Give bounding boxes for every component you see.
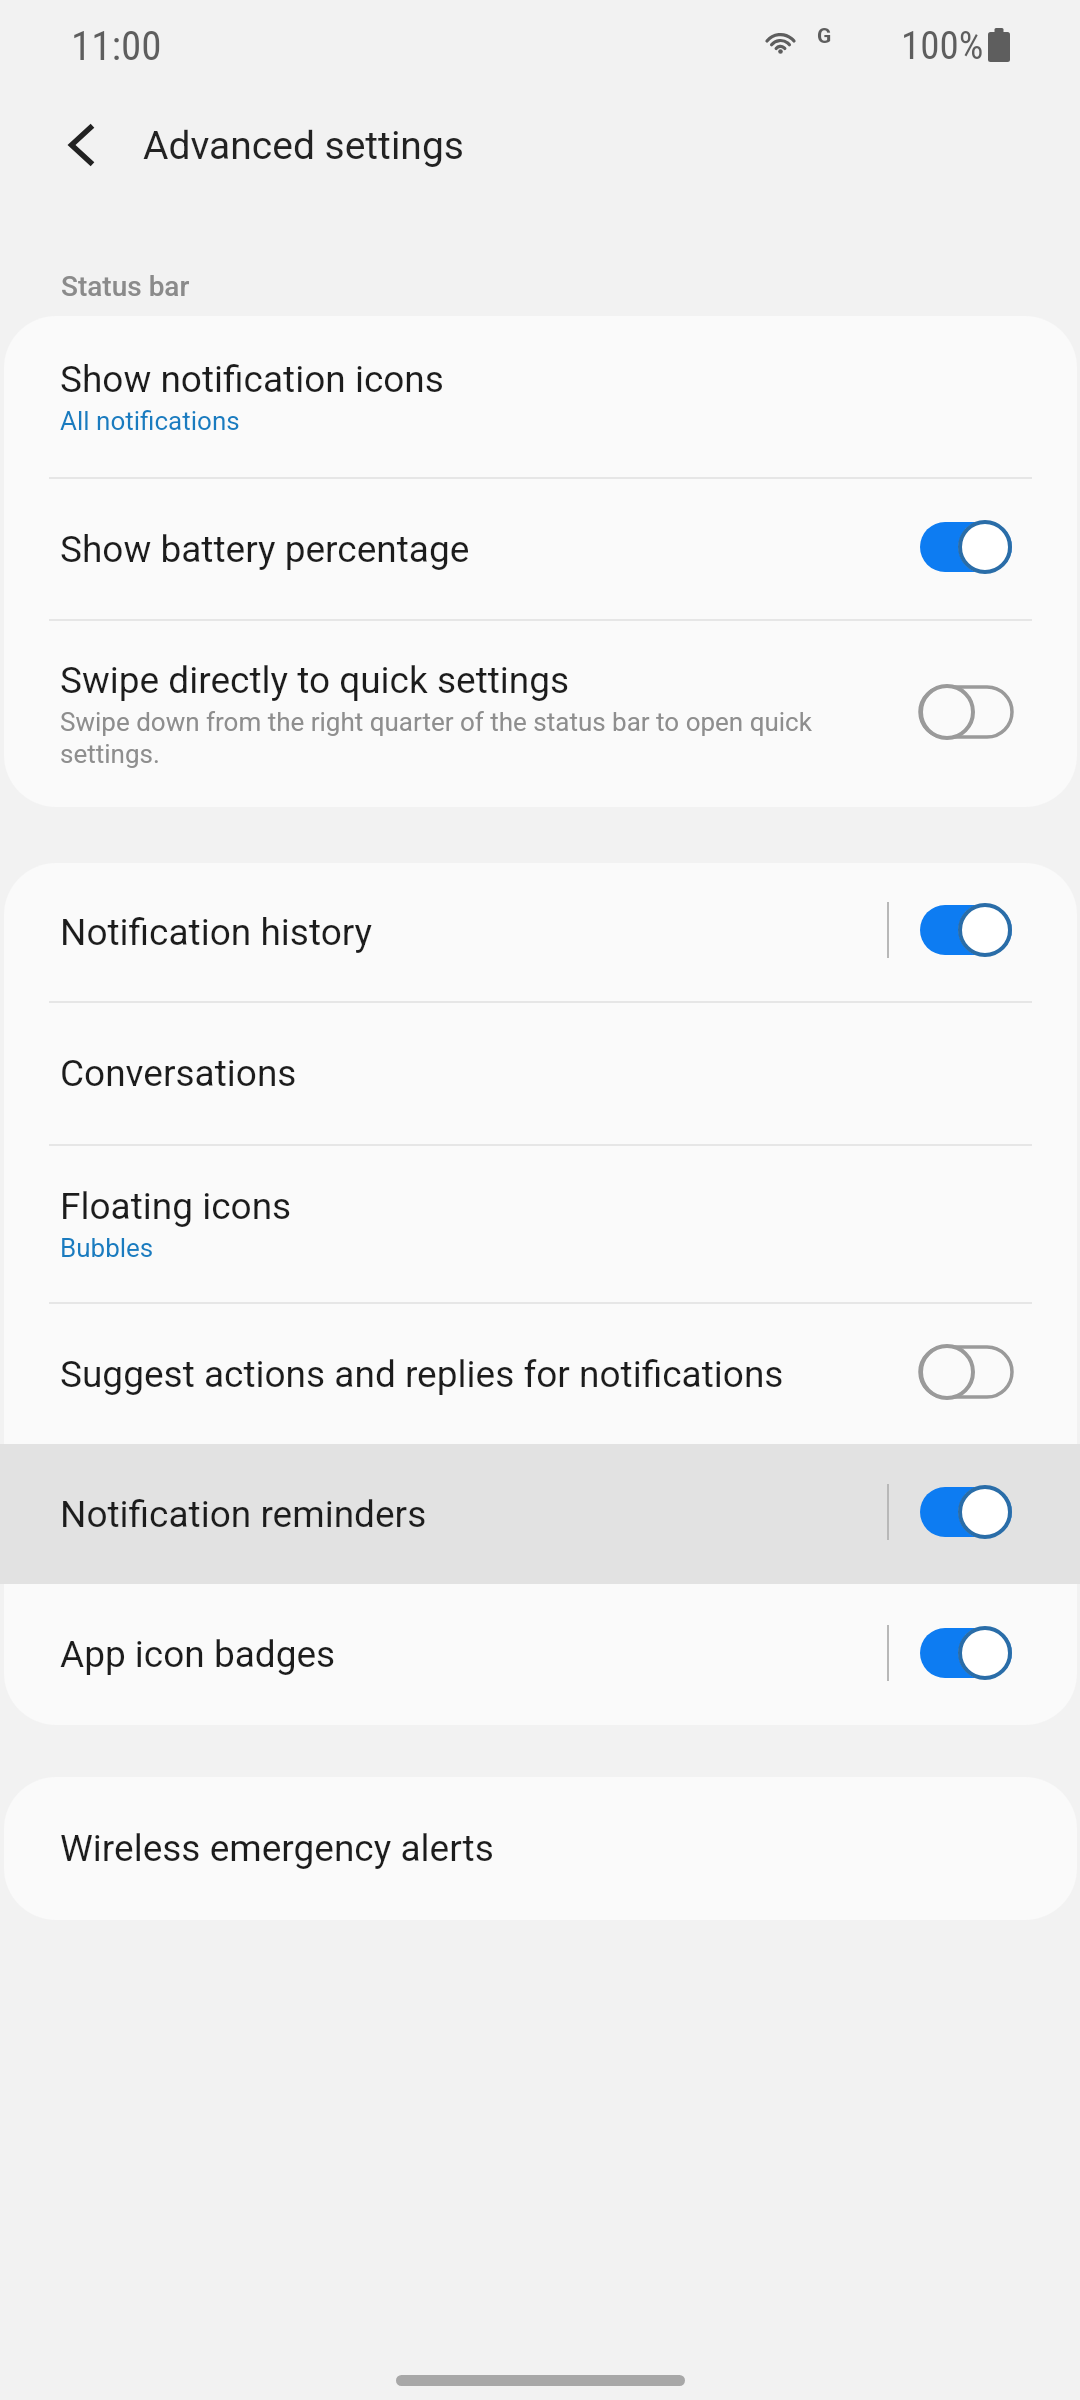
button[interactable]: Wireless emergency alerts	[4, 1777, 1077, 1920]
staticText: Swipe directly to quick settings	[60, 659, 570, 702]
staticText: Swipe down from the right quarter of the…	[60, 707, 850, 770]
button[interactable]: Conversations	[4, 1003, 1077, 1144]
staticText: Show notification icons	[60, 358, 444, 401]
button[interactable]: App icon badges	[4, 1584, 1077, 1725]
staticText: Floating icons	[60, 1185, 292, 1228]
staticText: 100%	[901, 23, 984, 69]
staticText: Suggest actions and replies for notifica…	[60, 1353, 784, 1396]
staticText: 11:00	[71, 22, 162, 70]
button[interactable]: Floating icons	[4, 1146, 1077, 1302]
staticText: Bubbles	[60, 1233, 154, 1263]
staticText: Advanced settings	[143, 123, 464, 169]
button[interactable]: Swipe directly to quick settings	[4, 621, 1077, 807]
button[interactable]: Notification reminders	[4, 1444, 1077, 1584]
button[interactable]: Notification history	[4, 863, 1077, 1001]
staticText: Show battery percentage	[60, 528, 470, 571]
button[interactable]: Back	[38, 102, 124, 188]
staticText: Conversations	[60, 1052, 297, 1095]
staticText: App icon badges	[60, 1633, 336, 1676]
button[interactable]: Switch off	[914, 1337, 1018, 1407]
button[interactable]: Show battery percentage	[4, 479, 1077, 619]
button[interactable]: Show notification icons	[4, 316, 1077, 477]
staticText: Wireless emergency alerts	[60, 1827, 494, 1870]
button[interactable]: Suggest actions and replies for notifica…	[4, 1304, 1077, 1444]
staticText: Notification reminders	[60, 1493, 427, 1536]
staticText: G	[817, 24, 832, 49]
button[interactable]: Switch on	[914, 1618, 1018, 1688]
staticText: Notification history	[60, 911, 373, 954]
button[interactable]: Switch on	[914, 1477, 1018, 1547]
staticText: All notifications	[60, 406, 240, 436]
button[interactable]: Switch off	[914, 677, 1018, 747]
button[interactable]: Switch on	[914, 512, 1018, 582]
staticText: Status bar	[61, 270, 190, 303]
button[interactable]: Switch on	[914, 895, 1018, 965]
